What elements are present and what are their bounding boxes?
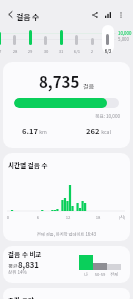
- button[interactable]: Back: [4, 8, 17, 21]
- staticText: 2: [85, 48, 99, 54]
- button[interactable]: 주간 요약: [3, 288, 130, 299]
- staticText: 8,831: [18, 259, 39, 270]
- staticText: 31: [54, 48, 68, 54]
- staticText: 목표: 10,000: [3, 113, 120, 120]
- staticText: 5,000: [118, 36, 129, 42]
- staticText: 18: [94, 214, 102, 220]
- staticText: 나: [79, 271, 93, 277]
- button[interactable]: 시간별 걸음 수: [3, 153, 130, 241]
- staticText: 시간별 걸음 수: [8, 160, 48, 170]
- staticText: 전체: [107, 271, 121, 277]
- button[interactable]: 8,735: [3, 62, 130, 148]
- staticText: 10,000: [118, 30, 132, 36]
- staticText: 28: [8, 48, 22, 54]
- button[interactable]: More options: [114, 8, 127, 21]
- staticText: 30: [39, 48, 53, 54]
- staticText: 걸음 수: [16, 11, 40, 22]
- staticText: 전체 걸음, 마지막 업데이트 16:43: [3, 231, 130, 237]
- staticText: 27: [0, 48, 6, 54]
- staticText: km: [38, 128, 47, 136]
- button[interactable]: Share: [88, 8, 101, 21]
- staticText: (시): [117, 214, 127, 220]
- button[interactable]: 걸음 수 비교: [3, 246, 130, 283]
- staticText: 50-59: [93, 271, 107, 277]
- staticText: 0: [5, 214, 11, 220]
- staticText: 29: [23, 48, 37, 54]
- staticText: 6/1: [70, 48, 84, 54]
- staticText: 6/3: [101, 48, 115, 54]
- staticText: 6.17: [22, 125, 38, 136]
- staticText: 262: [86, 125, 100, 136]
- staticText: 8,735: [39, 71, 80, 93]
- staticText: 걸음 수 비교: [8, 249, 42, 259]
- staticText: 상위 14%: [8, 269, 27, 276]
- staticText: 6: [35, 214, 41, 220]
- staticText: 걸음: [83, 82, 95, 91]
- staticText: kcal: [100, 128, 111, 136]
- staticText: 12: [64, 214, 72, 220]
- staticText: 주간 요약: [8, 295, 34, 299]
- button[interactable]: Statistics: [101, 8, 114, 21]
- staticText: 평균: [8, 262, 18, 270]
